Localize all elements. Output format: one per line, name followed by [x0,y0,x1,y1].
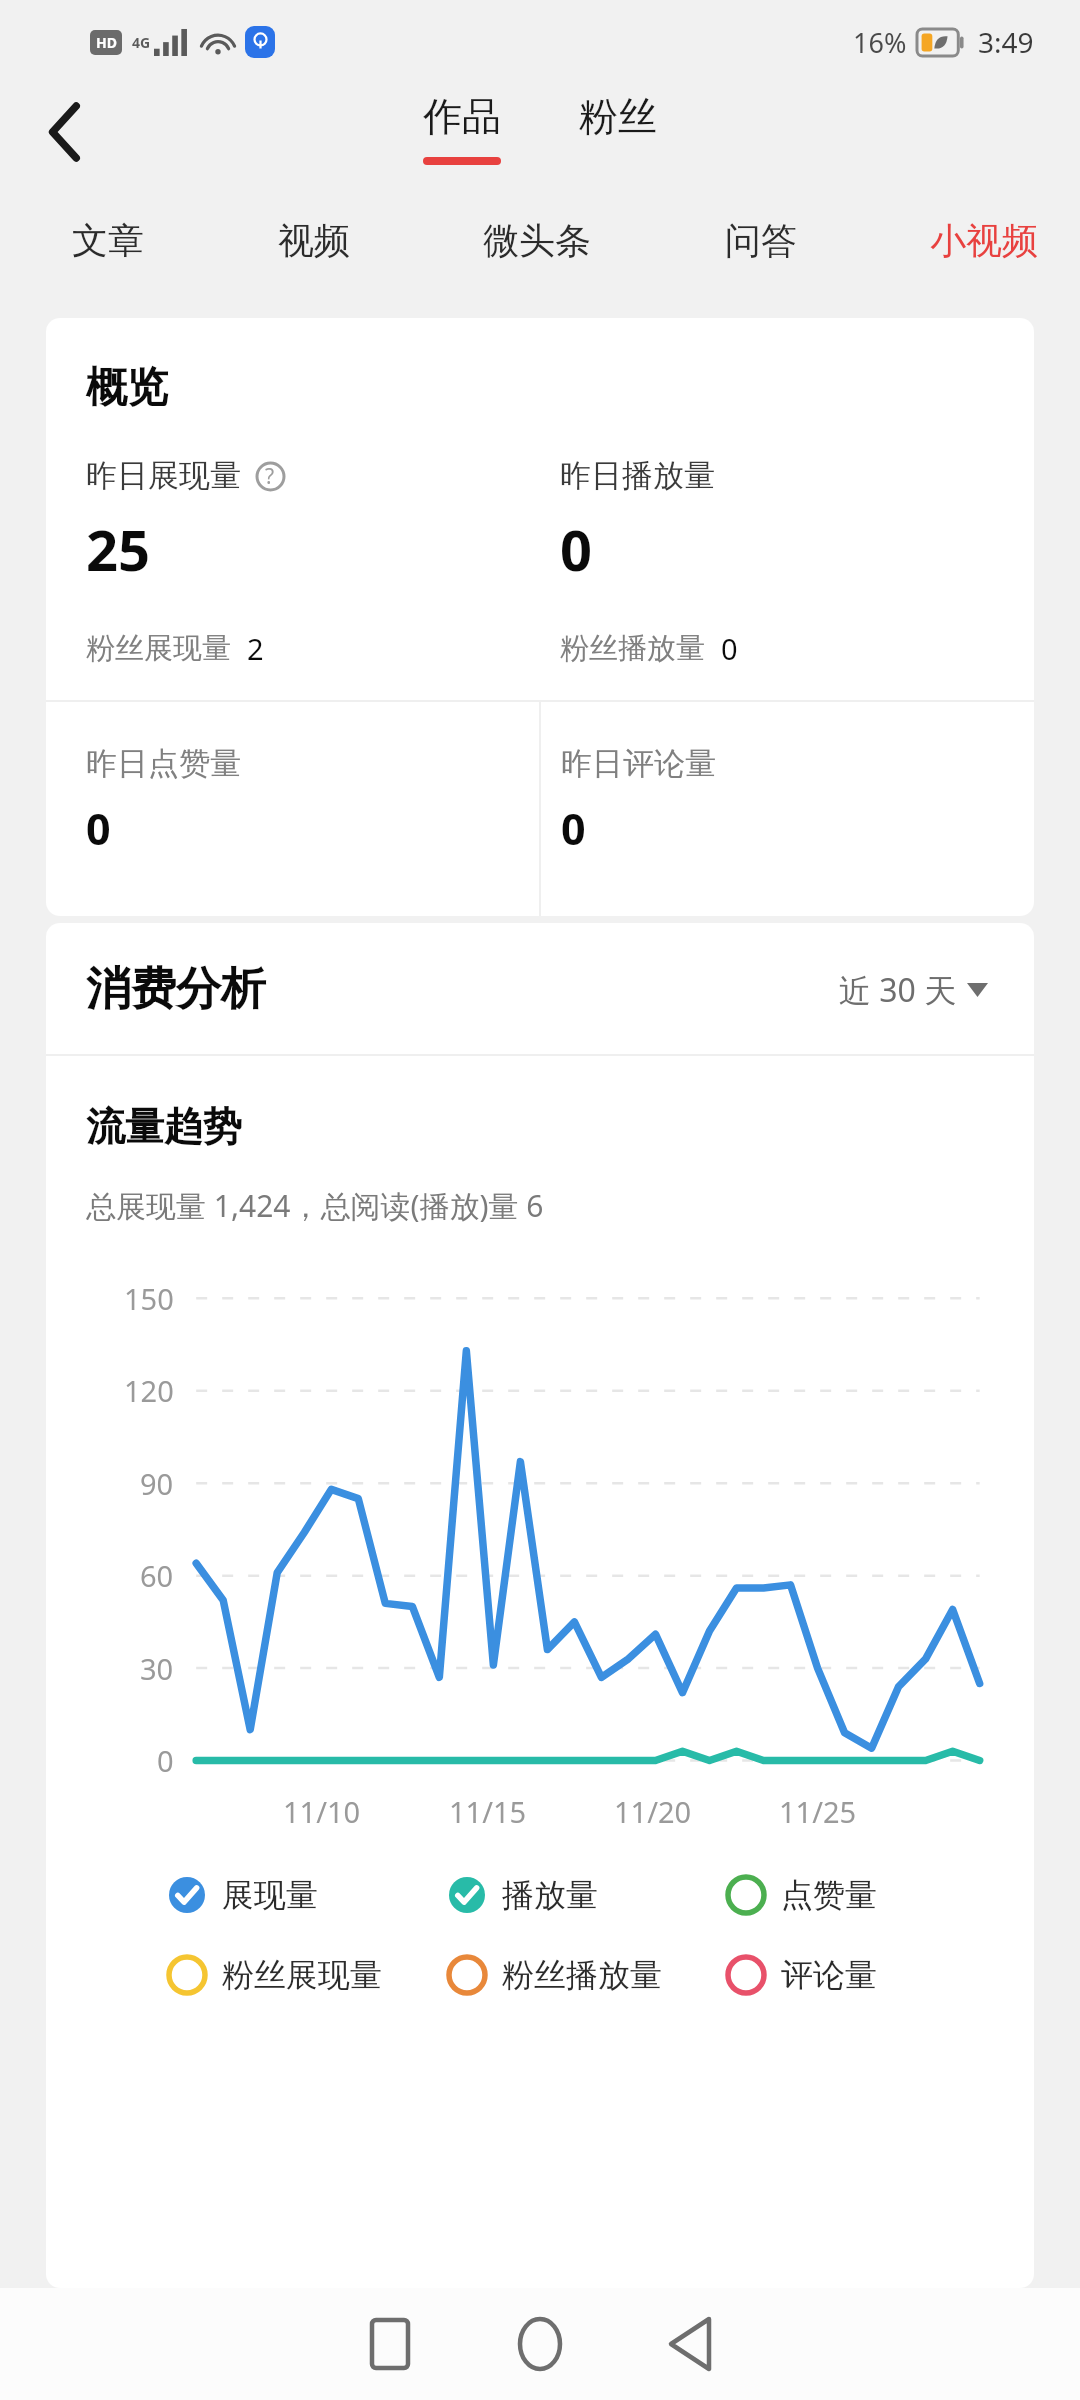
staticText: 小视频 [930,218,1038,263]
button[interactable]: 评论量 [725,1954,1004,1996]
staticText: 粉丝展现量 [86,630,231,667]
button[interactable]: 展现量 [166,1874,446,1916]
staticText: 150 [124,1279,174,1318]
staticText: 评论量 [781,1955,877,1995]
staticText: 粉丝播放量 [502,1955,662,1995]
button[interactable]: Back [22,88,110,176]
staticText: 昨日播放量 [560,456,715,495]
button[interactable]: 文章 [66,206,150,275]
button[interactable]: 微头条 [477,206,597,275]
staticText: 问答 [725,218,797,263]
staticText: 总展现量 1,424，总阅读(播放)量 6 [86,1185,544,1226]
staticText: 微头条 [483,218,591,263]
staticText: 0 [86,799,111,858]
staticText: 90 [140,1464,174,1503]
staticText: 粉丝播放量 [560,630,705,667]
button[interactable]: 粉丝播放量 [446,1954,725,1996]
button[interactable]: 点赞量 [725,1874,1004,1916]
staticText: 30 [140,1649,174,1688]
staticText: 昨日点赞量 [86,744,241,783]
staticText: 文章 [72,218,144,263]
staticText: 近 30 天 [839,968,957,1012]
staticText: 粉丝展现量 [222,1955,382,1995]
staticText: 播放量 [502,1875,598,1915]
staticText: 0 [560,511,593,587]
staticText: 展现量 [222,1875,318,1915]
button[interactable]: Help [253,459,287,493]
staticText: 3:49 [978,23,1034,61]
staticText: 4G [132,33,151,52]
staticText: 粉丝 [579,92,657,141]
staticText: 11/20 [614,1792,692,1831]
staticText: 11/10 [283,1792,361,1831]
button[interactable]: 问答 [719,206,803,275]
staticText: 2 [247,629,264,668]
staticText: 16% [853,24,907,61]
button[interactable]: 作品 [407,92,517,165]
staticText: 视频 [278,218,350,263]
staticText: 25 [86,511,151,587]
staticText: 120 [124,1371,174,1410]
staticText: 点赞量 [781,1875,877,1915]
staticText: ? [265,462,275,491]
staticText: 昨日展现量 [86,456,241,495]
button[interactable]: 小视频 [924,206,1044,275]
button[interactable]: 粉丝展现量 [166,1954,446,1996]
staticText: 作品 [423,92,501,141]
staticText: HD [96,33,117,52]
button[interactable]: Recents [315,2288,465,2400]
staticText: 0 [157,1741,174,1780]
staticText: 0 [721,629,738,668]
staticText: 昨日评论量 [561,744,716,783]
button[interactable]: Home [465,2288,615,2400]
button[interactable]: 近 30 天 [833,962,994,1018]
staticText: 概览 [86,362,168,414]
button[interactable]: 播放量 [446,1874,725,1916]
button[interactable]: Back [615,2288,765,2400]
button[interactable]: 视频 [272,206,356,275]
button[interactable]: 粉丝 [563,92,673,141]
staticText: 消费分析 [86,961,266,1018]
staticText: 60 [140,1556,174,1595]
staticText: 11/15 [449,1792,527,1831]
staticText: 11/25 [779,1792,857,1831]
staticText: 0 [561,799,586,858]
staticText: 流量趋势 [86,1102,242,1151]
